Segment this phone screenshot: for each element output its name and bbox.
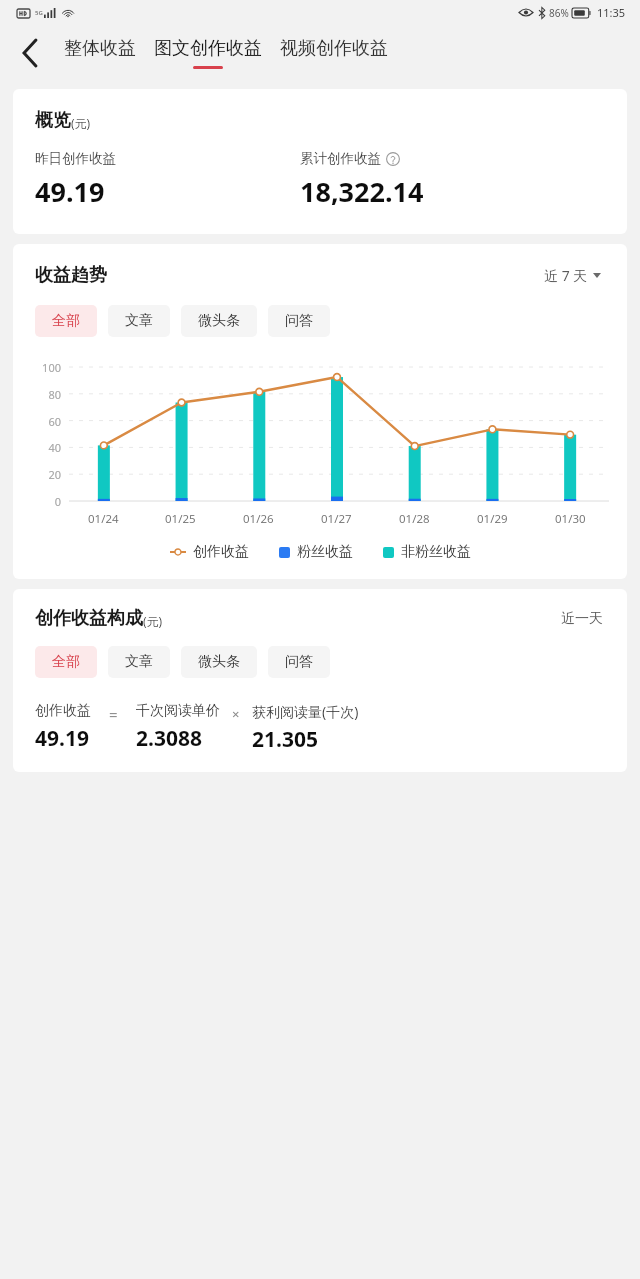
staticText: 01/29 (477, 511, 508, 527)
staticText: 创作收益构成 (35, 607, 143, 630)
staticText: 60 (27, 414, 61, 429)
staticText: 86% (549, 6, 569, 20)
staticText: 21.305 (252, 725, 318, 754)
button[interactable]: 微头条 (181, 646, 257, 678)
staticText: 80 (27, 387, 61, 402)
staticText: 01/28 (399, 511, 430, 527)
staticText: 创作收益 (193, 543, 249, 561)
staticText: 视频创作收益 (280, 37, 388, 60)
button[interactable]: Help (386, 152, 400, 166)
button[interactable]: 文章 (108, 646, 170, 678)
staticText: 微头条 (198, 653, 240, 671)
staticText: 文章 (125, 653, 153, 671)
staticText: 40 (27, 440, 61, 455)
staticText: 01/24 (88, 511, 119, 527)
staticText: 累计创作收益 (300, 150, 381, 167)
button[interactable]: 整体收益 (62, 33, 138, 73)
staticText: 全部 (52, 653, 80, 671)
staticText: 粉丝收益 (297, 543, 353, 561)
staticText: 0 (27, 494, 61, 509)
staticText: × (232, 705, 240, 723)
button[interactable]: Back (8, 31, 52, 75)
staticText: 文章 (125, 312, 153, 330)
staticText: 千次阅读单价 (136, 702, 220, 720)
button[interactable]: 粉丝收益 (275, 539, 357, 565)
button[interactable]: 全部 (35, 305, 97, 337)
button[interactable]: 近 7 天 (540, 262, 605, 289)
staticText: 问答 (285, 653, 313, 671)
staticText: 问答 (285, 312, 313, 330)
button[interactable]: 文章 (108, 305, 170, 337)
button[interactable]: 近一天 (559, 608, 605, 630)
staticText: (元) (143, 613, 163, 629)
staticText: 近 7 天 (544, 266, 588, 285)
staticText: 非粉丝收益 (401, 543, 471, 561)
staticText: 18,322.14 (300, 173, 424, 210)
staticText: 100 (27, 360, 61, 375)
button[interactable]: 创作收益 (166, 539, 253, 565)
staticText: 图文创作收益 (154, 37, 262, 60)
staticText: 获利阅读量(千次) (252, 702, 359, 721)
staticText: 49.19 (35, 724, 89, 753)
button[interactable]: 问答 (268, 305, 330, 337)
staticText: 20 (27, 467, 61, 482)
staticText: 49.19 (35, 173, 105, 210)
staticText: 整体收益 (64, 37, 136, 60)
staticText: 01/30 (555, 511, 586, 527)
staticText: 01/26 (243, 511, 274, 527)
staticText: (元) (71, 115, 91, 131)
button[interactable]: 图文创作收益 (152, 33, 264, 73)
button[interactable]: 概览 (13, 89, 627, 234)
staticText: = (109, 704, 118, 724)
button[interactable]: 全部 (35, 646, 97, 678)
staticText: 01/25 (165, 511, 196, 527)
staticText: 5G (35, 9, 43, 17)
staticText: 创作收益 (35, 702, 91, 720)
staticText: 01/27 (321, 511, 352, 527)
staticText: 昨日创作收益 (35, 150, 116, 167)
staticText: 概览 (35, 109, 71, 132)
staticText: 2.3088 (136, 724, 202, 753)
button[interactable]: 微头条 (181, 305, 257, 337)
staticText: 微头条 (198, 312, 240, 330)
staticText: 11:35 (597, 5, 626, 20)
staticText: 全部 (52, 312, 80, 330)
button[interactable]: 非粉丝收益 (379, 539, 475, 565)
button[interactable]: 视频创作收益 (278, 33, 390, 73)
button[interactable]: 问答 (268, 646, 330, 678)
staticText: 收益趋势 (35, 264, 107, 287)
